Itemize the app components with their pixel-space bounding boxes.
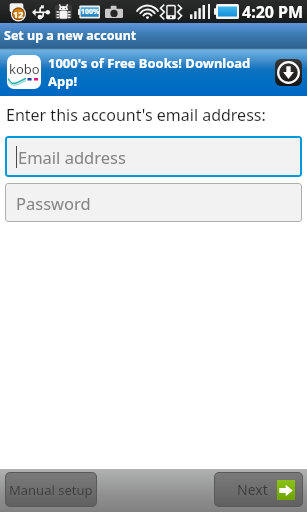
button[interactable]: Email address xyxy=(5,136,302,177)
staticText: App! xyxy=(48,72,78,90)
staticText: kobo xyxy=(9,60,40,78)
button[interactable]: Next xyxy=(214,472,303,507)
staticText: 4:20 PM xyxy=(242,1,304,23)
button[interactable]: Manual setup xyxy=(5,472,97,507)
staticText: 12 xyxy=(13,8,24,20)
staticText: Password xyxy=(16,192,91,214)
staticText: Enter this account's email address: xyxy=(6,104,266,126)
staticText: Email address xyxy=(18,146,126,168)
button[interactable]: Password xyxy=(5,183,302,222)
staticText: Set up a new account xyxy=(4,27,137,44)
staticText: 100% xyxy=(81,7,100,17)
button[interactable]: Download app xyxy=(275,59,302,86)
staticText: 1000's of Free Books! Download xyxy=(48,54,251,72)
staticText: Next xyxy=(237,480,268,499)
button[interactable]: kobo xyxy=(0,48,307,96)
staticText: Manual setup xyxy=(9,481,93,499)
